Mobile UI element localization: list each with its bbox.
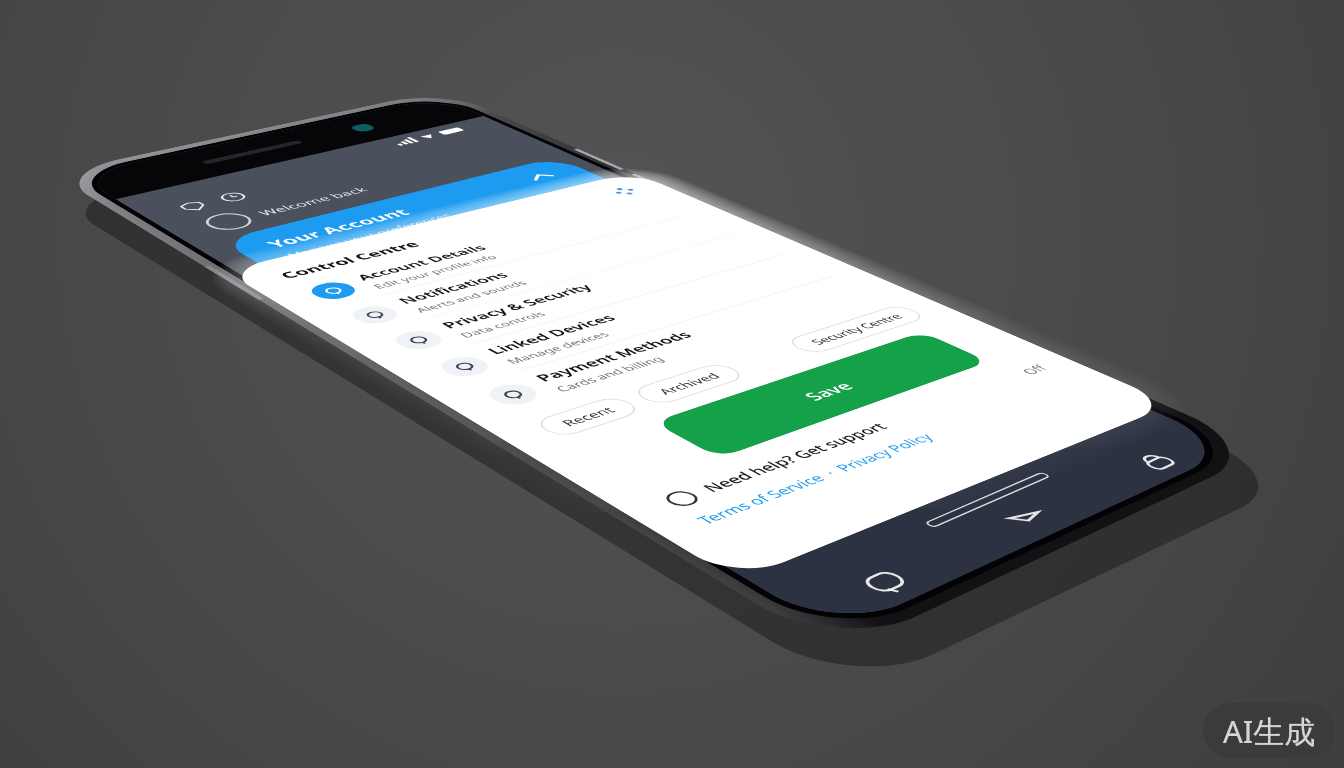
button[interactable]: Save [653, 332, 989, 458]
staticText: AI生成 [1223, 710, 1316, 752]
staticText: Archived [653, 370, 725, 397]
staticText: Control Centre [275, 239, 425, 281]
staticText: Cards and billing [551, 354, 668, 394]
button[interactable]: Notifications [300, 207, 761, 342]
staticText: Welcome back [254, 185, 372, 218]
button[interactable]: Linked Devices [386, 247, 858, 397]
button[interactable]: Privacy & Security [342, 227, 809, 369]
staticText: Notifications [393, 270, 513, 306]
button[interactable]: Messages [839, 559, 935, 608]
staticText: Terms of Service · Privacy Policy [691, 431, 939, 528]
button[interactable]: Account Details [260, 189, 716, 317]
staticText: Recent [557, 404, 619, 429]
staticText: Edit your profile info [369, 253, 501, 291]
staticText: Your Account [261, 206, 415, 250]
staticText: Payment Methods [530, 329, 698, 384]
button[interactable]: Send [984, 497, 1075, 540]
staticText: Linked Devices [482, 312, 621, 357]
button[interactable]: Security [1113, 442, 1199, 481]
staticText: Manage your preferences [283, 211, 456, 260]
button[interactable]: Archived [628, 361, 749, 406]
staticText: Privacy & Security [436, 282, 598, 331]
staticText: Need help? Get support [697, 420, 893, 495]
staticText: Off [1017, 363, 1052, 377]
staticText: Save [796, 378, 860, 403]
staticText: Data controls [456, 309, 550, 340]
staticText: Alerts and sounds [411, 279, 531, 315]
staticText: Account Details [352, 243, 491, 283]
button[interactable]: Payment Methods [433, 269, 910, 427]
staticText: Security Centre [806, 312, 907, 347]
staticText: Manage devices [502, 330, 614, 366]
button[interactable]: Recent [531, 395, 645, 439]
button[interactable]: Security Centre [783, 304, 929, 355]
